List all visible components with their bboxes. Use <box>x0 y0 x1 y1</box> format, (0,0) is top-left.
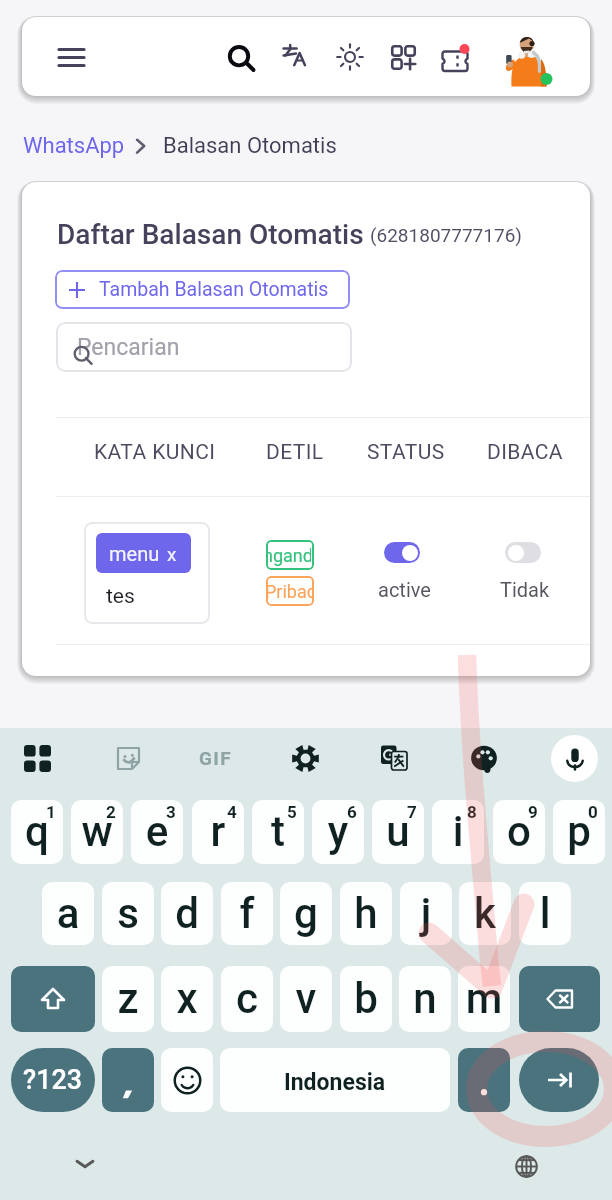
staticText: 7 <box>407 802 417 822</box>
button[interactable]: r <box>192 800 244 864</box>
staticText: Pribad <box>266 581 313 602</box>
button[interactable]: Status active <box>362 532 466 612</box>
button[interactable]: Voice input <box>551 735 598 782</box>
staticText: tes <box>106 584 135 609</box>
staticText: 4 <box>227 802 237 822</box>
button[interactable]: Google translate <box>371 735 417 781</box>
button[interactable]: Themes <box>461 735 507 781</box>
button[interactable]: GIF <box>193 735 239 781</box>
button[interactable]: ?123 <box>11 1048 95 1112</box>
button[interactable]: Brightness <box>327 34 373 80</box>
button[interactable]: Tambah Balasan Otomatis <box>55 270 350 309</box>
staticText: WhatsApp <box>23 133 125 159</box>
button[interactable]: Backspace <box>519 966 600 1032</box>
button[interactable]: w <box>71 800 123 864</box>
button[interactable]: Period <box>458 1048 510 1112</box>
button[interactable]: Menu <box>48 34 94 80</box>
button[interactable]: Coupons <box>433 35 479 81</box>
button[interactable]: o <box>493 800 545 864</box>
staticText: KATA KUNCI <box>94 440 216 465</box>
button[interactable]: m <box>458 966 510 1032</box>
staticText: y <box>312 807 364 856</box>
staticText: 0 <box>588 802 598 822</box>
button[interactable]: ngando <box>266 540 314 570</box>
button[interactable]: New tab <box>380 34 426 80</box>
staticText: n <box>399 974 451 1023</box>
staticText: DETIL <box>266 440 324 465</box>
button[interactable]: q <box>11 800 63 864</box>
button[interactable]: z <box>102 966 154 1032</box>
button[interactable]: x <box>161 966 213 1032</box>
staticText: Tambah Balasan Otomatis <box>99 278 329 301</box>
button[interactable]: Pencarian <box>56 322 352 372</box>
button[interactable]: Account <box>498 30 554 90</box>
staticText: DIBACA <box>487 440 563 465</box>
staticText: active <box>378 578 431 601</box>
staticText: z <box>102 974 154 1023</box>
button[interactable]: Change keyboard language <box>503 1143 549 1189</box>
button[interactable]: WhatsApp <box>23 133 125 159</box>
staticText: u <box>372 807 424 856</box>
button[interactable]: g <box>280 882 332 945</box>
staticText: Indonesia <box>284 1069 386 1096</box>
button[interactable]: y <box>312 800 364 864</box>
staticText: c <box>221 974 273 1023</box>
button[interactable]: Search <box>217 34 263 80</box>
button[interactable]: Enter <box>519 1048 599 1112</box>
button[interactable]: n <box>399 966 451 1032</box>
staticText: ngando <box>266 545 311 566</box>
button[interactable]: h <box>340 882 392 945</box>
staticText: r <box>192 807 244 856</box>
staticText: o <box>493 807 545 856</box>
button[interactable]: Emoji <box>161 1048 213 1112</box>
staticText: q <box>11 807 63 856</box>
button[interactable]: e <box>131 800 183 864</box>
staticText: Balasan Otomatis <box>163 133 337 159</box>
staticText: ?123 <box>23 1064 83 1096</box>
staticText: 1 <box>46 802 56 822</box>
button[interactable]: Keyboard settings <box>282 735 328 781</box>
staticText: GIF <box>199 747 233 769</box>
button[interactable]: b <box>340 966 392 1032</box>
button[interactable]: Hide keyboard <box>62 1141 108 1187</box>
staticText: v <box>280 974 332 1023</box>
staticText: Tidak <box>500 578 550 601</box>
button[interactable]: u <box>372 800 424 864</box>
button[interactable]: Dibaca tidak <box>483 532 587 612</box>
button[interactable]: l <box>519 882 571 945</box>
staticText: k <box>459 889 511 938</box>
staticText: h <box>340 889 392 938</box>
button[interactable]: p <box>553 800 605 864</box>
button[interactable]: Clipboard <box>14 735 60 781</box>
button[interactable]: Pribad <box>266 576 314 606</box>
staticText: STATUS <box>367 440 445 465</box>
staticText: b <box>340 974 392 1023</box>
button[interactable]: c <box>221 966 273 1032</box>
button[interactable]: j <box>400 882 452 945</box>
button[interactable]: s <box>102 882 154 945</box>
button[interactable]: a <box>42 882 94 945</box>
staticText: p <box>553 807 605 856</box>
staticText: s <box>102 889 154 938</box>
staticText: Pencarian <box>77 334 180 361</box>
button[interactable]: Comma <box>102 1048 154 1112</box>
button[interactable]: t <box>252 800 304 864</box>
button[interactable]: v <box>280 966 332 1032</box>
button[interactable]: Stickers <box>105 735 151 781</box>
staticText: w <box>71 807 123 856</box>
button[interactable]: d <box>161 882 213 945</box>
staticText: 9 <box>528 802 538 822</box>
button[interactable]: i <box>432 800 484 864</box>
button[interactable]: k <box>459 882 511 945</box>
button[interactable]: Shift <box>11 966 95 1032</box>
button[interactable]: Space, Indonesia <box>220 1048 450 1112</box>
staticText: menu <box>109 542 160 565</box>
staticText: 3 <box>166 802 176 822</box>
button[interactable]: menu <box>84 522 210 624</box>
staticText: j <box>400 889 452 938</box>
staticText: i <box>432 807 484 856</box>
button[interactable]: Translate page <box>273 34 319 80</box>
staticText: x <box>167 543 177 565</box>
staticText: a <box>42 889 94 938</box>
button[interactable]: f <box>221 882 273 945</box>
